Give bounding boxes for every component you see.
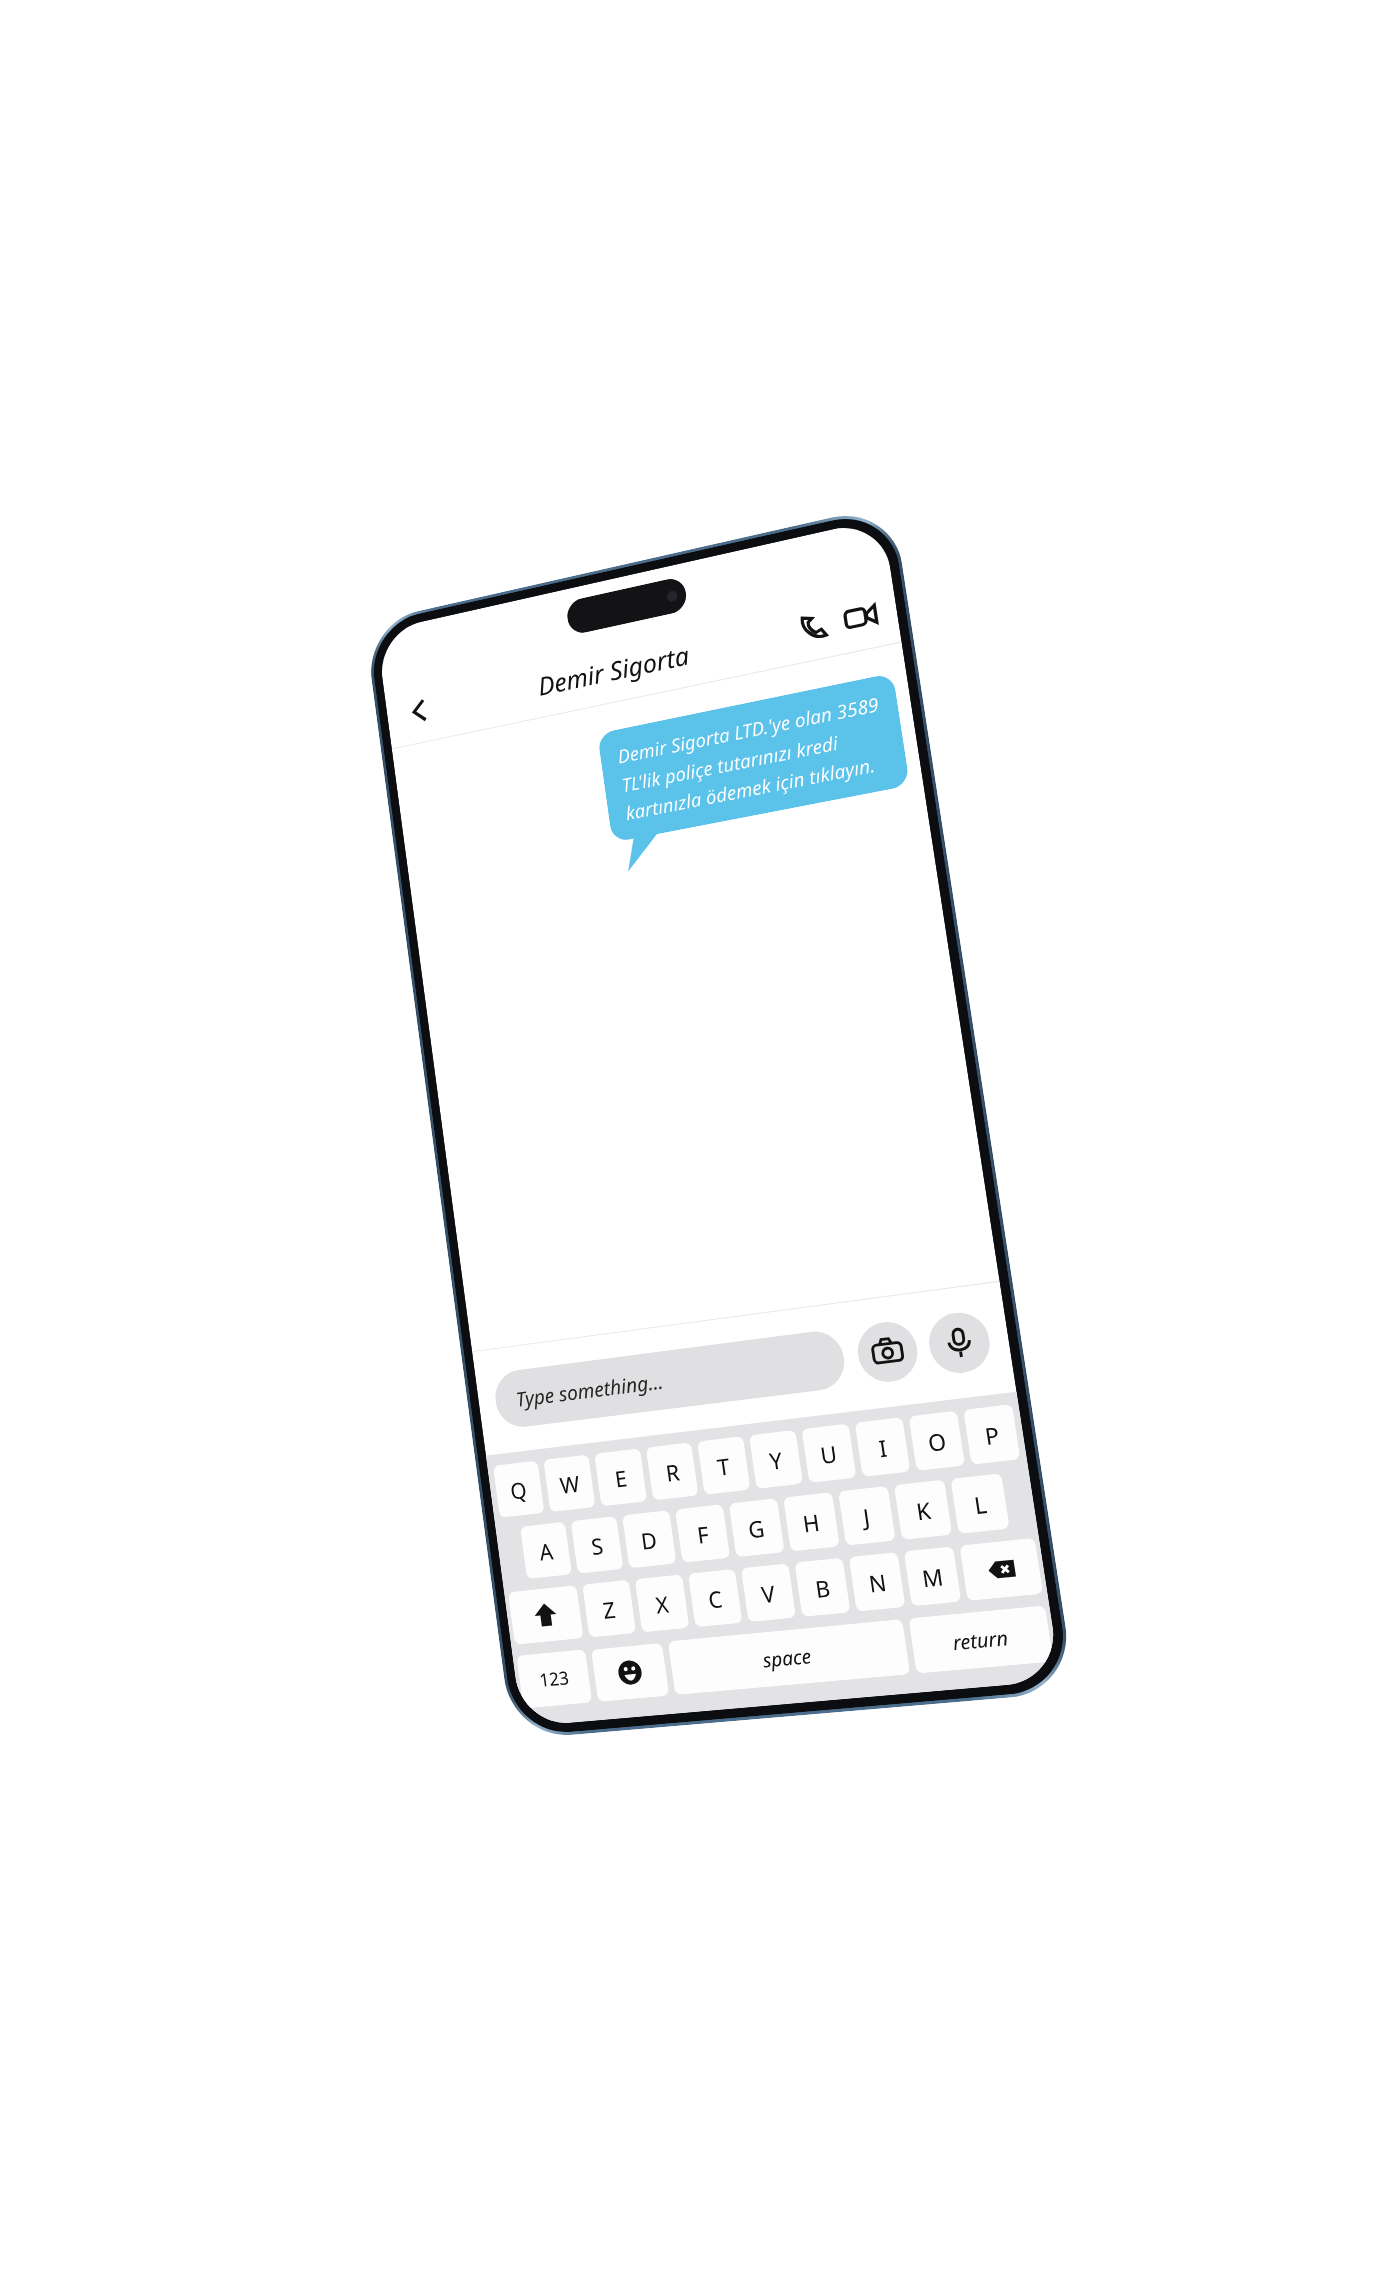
button[interactable]: B [794,1558,851,1617]
button[interactable]: O [908,1410,965,1471]
button[interactable]: T [697,1436,751,1495]
button[interactable]: Type something... [492,1328,848,1430]
button[interactable]: H [783,1492,840,1552]
staticText: O [926,1425,949,1458]
staticText: Q [508,1474,529,1505]
staticText: Y [767,1444,785,1476]
staticText: E [613,1462,629,1493]
button[interactable]: F [675,1504,730,1563]
button[interactable]: P [963,1404,1021,1465]
button[interactable]: Microphone [925,1309,994,1376]
staticText: space [761,1642,814,1674]
staticText: L [972,1488,989,1520]
staticText: K [914,1494,933,1527]
button[interactable]: S [571,1516,623,1574]
button[interactable]: Emoji [591,1643,669,1702]
staticText: P [983,1418,1002,1451]
button[interactable]: C [688,1569,743,1627]
button[interactable]: Q [493,1460,545,1518]
button[interactable]: U [801,1423,856,1483]
button[interactable]: A [520,1522,572,1579]
staticText: M [920,1560,945,1593]
button[interactable]: R [646,1442,699,1501]
button[interactable]: Shift [508,1585,584,1645]
staticText: X [654,1588,670,1620]
button[interactable]: X [635,1574,689,1632]
staticText: C [706,1583,724,1615]
button[interactable]: J [838,1486,896,1546]
staticText: A [537,1535,555,1566]
button[interactable]: Camera [854,1318,921,1385]
button[interactable]: E [594,1448,647,1506]
button[interactable]: L [950,1473,1010,1534]
staticText: T [715,1450,732,1482]
button[interactable]: D [622,1510,677,1568]
button[interactable]: Video call [835,590,886,643]
staticText: N [867,1566,889,1599]
staticText: J [861,1500,873,1532]
button[interactable]: K [894,1479,952,1540]
staticText: D [639,1524,660,1556]
button[interactable]: V [741,1563,796,1622]
button[interactable]: Backspace [959,1538,1043,1601]
button[interactable]: Y [749,1430,803,1489]
staticText: Demir Sigorta LTD.'ye olan 3589 TL'lik p… [616,691,890,825]
staticText: return [951,1624,1010,1656]
staticText: G [746,1512,767,1544]
button[interactable]: N [849,1552,906,1612]
button[interactable]: Back [397,686,442,736]
button[interactable]: space [668,1619,910,1695]
button[interactable]: M [904,1546,961,1606]
staticText: Type something... [514,1367,665,1413]
staticText: B [813,1572,833,1604]
button[interactable]: 123 [516,1649,592,1709]
staticText: V [759,1577,778,1609]
staticText: S [589,1530,606,1561]
staticText: 123 [538,1665,570,1693]
button[interactable]: Z [582,1580,636,1638]
staticText: U [818,1437,840,1470]
button[interactable]: Voice call [790,602,838,651]
staticText: F [695,1518,711,1550]
staticText: R [664,1456,681,1488]
staticText: H [801,1506,822,1539]
staticText: Z [601,1593,617,1625]
button[interactable]: W [543,1454,596,1512]
button[interactable]: G [729,1498,785,1557]
staticText: W [558,1468,582,1500]
button[interactable]: return [908,1605,1054,1674]
button[interactable]: I [855,1417,910,1477]
staticText: Demir Sigorta [437,614,796,723]
button[interactable]: Demir Sigorta LTD.'ye olan 3589 TL'lik p… [597,673,910,843]
staticText: I [877,1432,889,1463]
